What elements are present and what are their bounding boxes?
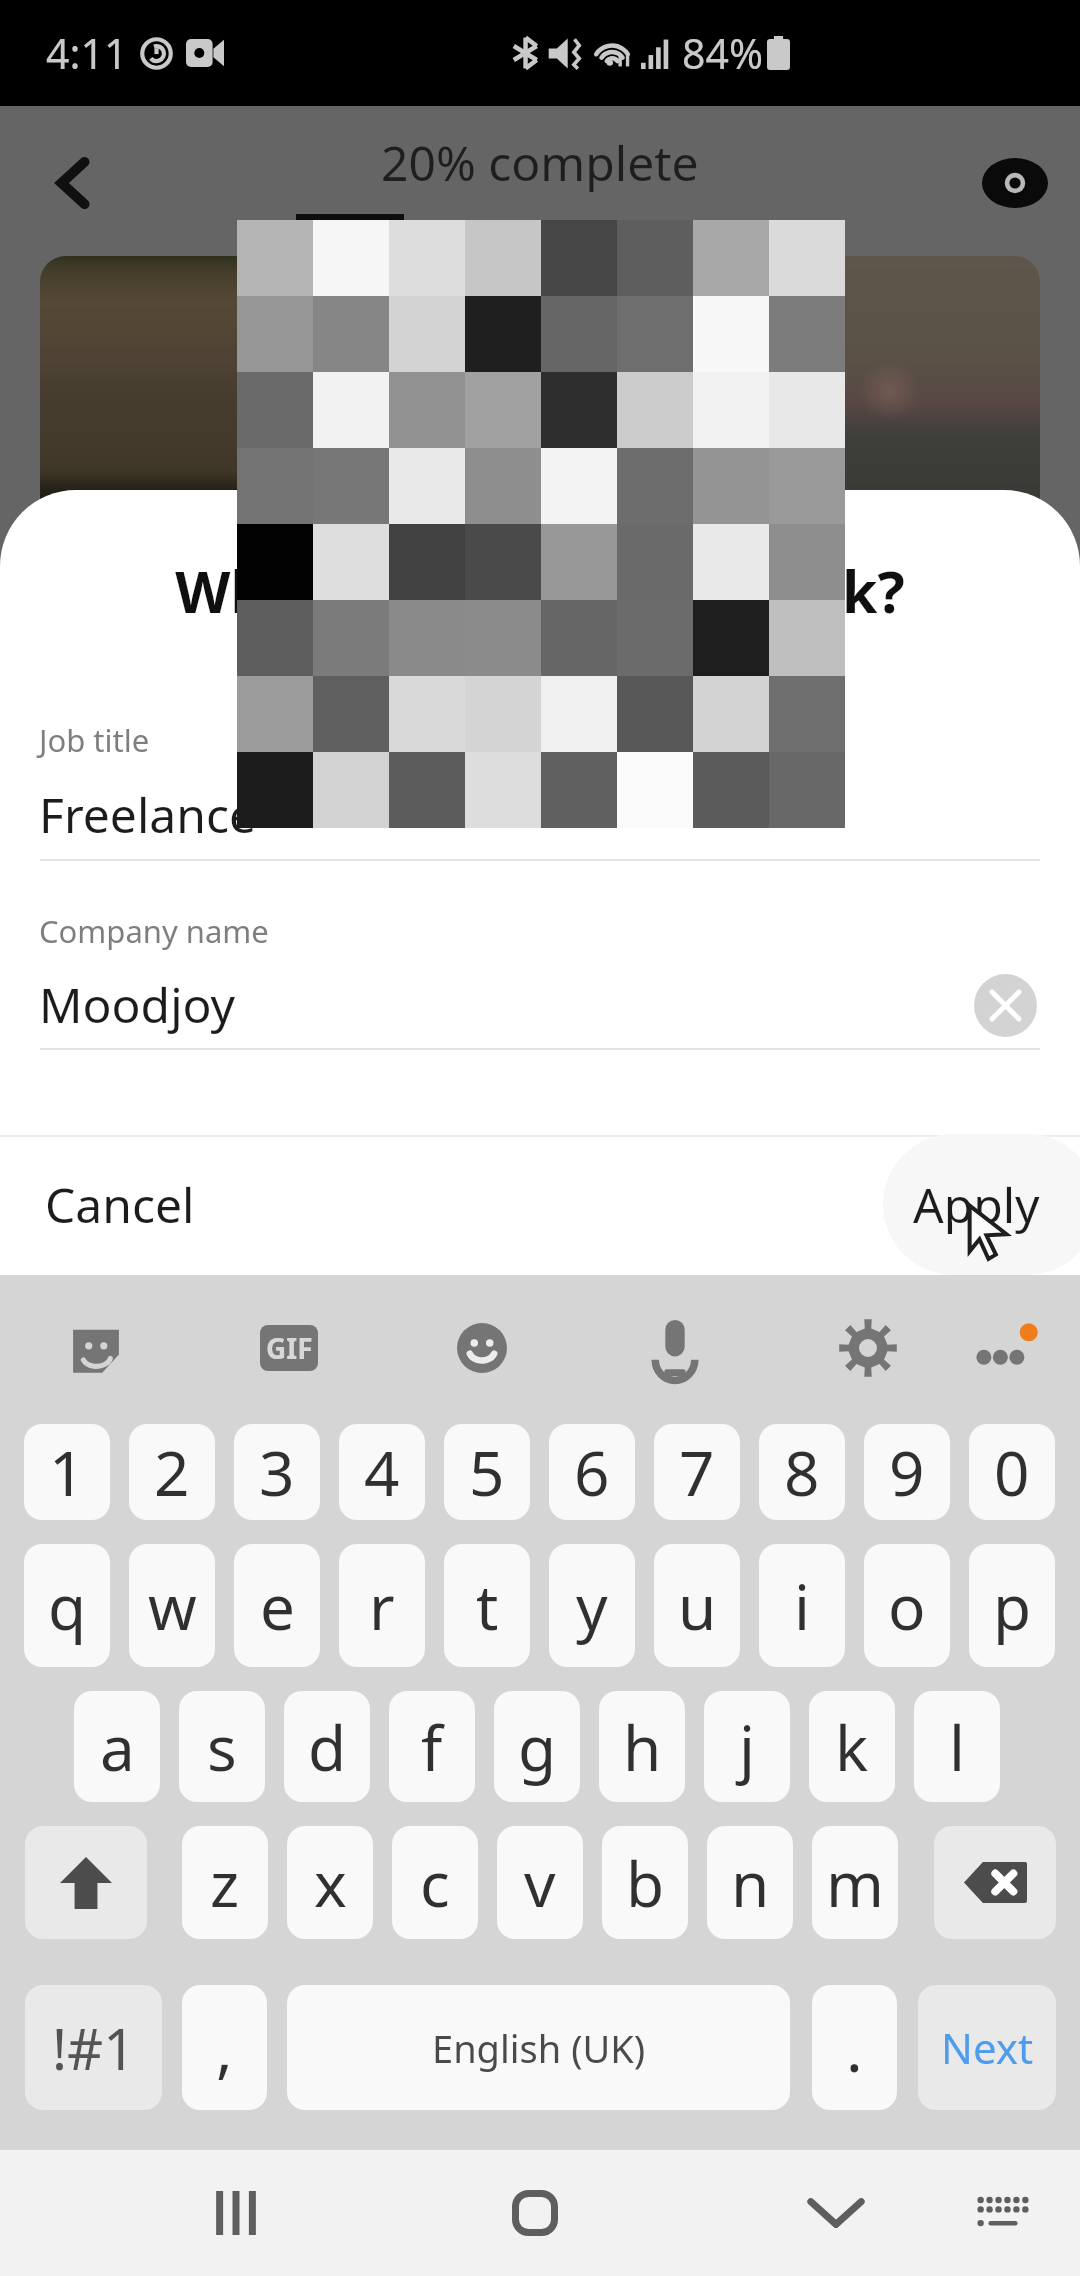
button[interactable]: Next <box>918 1985 1056 2110</box>
button[interactable]: r <box>339 1544 425 1667</box>
button[interactable]: 2 <box>129 1424 215 1520</box>
button[interactable]: Home <box>475 2150 595 2276</box>
button[interactable]: Change keyboard <box>943 2150 1063 2276</box>
staticText: 84% <box>682 25 763 81</box>
staticText: What do you do for work? <box>10 552 1070 630</box>
button[interactable]: 5 <box>444 1424 530 1520</box>
button[interactable]: j <box>704 1691 790 1802</box>
button[interactable]: u <box>654 1544 740 1667</box>
staticText: GIF <box>266 1329 313 1367</box>
staticText: a <box>100 1705 135 1789</box>
button[interactable]: h <box>599 1691 685 1802</box>
button[interactable]: Keyboard settings <box>822 1302 914 1394</box>
staticText: i <box>794 1564 810 1648</box>
button[interactable]: w <box>129 1544 215 1667</box>
staticText: m <box>826 1841 884 1925</box>
button[interactable]: x <box>287 1826 373 1939</box>
button[interactable]: Back <box>27 137 119 229</box>
staticText: k <box>835 1705 869 1789</box>
staticText: English (UK) <box>432 2022 646 2074</box>
staticText: q <box>48 1564 87 1648</box>
staticText: f <box>421 1705 443 1789</box>
button[interactable]: Cancel <box>11 1144 229 1265</box>
staticText: b <box>626 1841 665 1925</box>
button[interactable]: m <box>812 1826 898 1939</box>
staticText: d <box>308 1705 347 1789</box>
staticText: 4:11 <box>46 25 128 81</box>
button[interactable]: 8 <box>759 1424 845 1520</box>
staticText: v <box>524 1841 556 1925</box>
staticText: 4 <box>364 1430 400 1514</box>
staticText: w <box>148 1564 197 1648</box>
staticText: . <box>846 2006 863 2090</box>
staticText: o <box>888 1564 926 1648</box>
staticText: s <box>207 1705 237 1789</box>
staticText: e <box>260 1564 295 1648</box>
button[interactable]: y <box>549 1544 635 1667</box>
button[interactable]: n <box>707 1826 793 1939</box>
staticText: 1 <box>49 1430 85 1514</box>
button[interactable]: v <box>497 1826 583 1939</box>
button[interactable]: 7 <box>654 1424 740 1520</box>
button[interactable]: 0 <box>969 1424 1055 1520</box>
button[interactable]: Emoji <box>436 1302 528 1394</box>
staticText: r <box>369 1564 395 1648</box>
staticText: 5 <box>469 1430 505 1514</box>
staticText: Company name <box>39 910 269 952</box>
button[interactable]: e <box>234 1544 320 1667</box>
button[interactable]: 4 <box>339 1424 425 1520</box>
button[interactable]: c <box>392 1826 478 1939</box>
button[interactable]: 3 <box>234 1424 320 1520</box>
button[interactable]: a <box>74 1691 160 1802</box>
button[interactable]: s <box>179 1691 265 1802</box>
button[interactable]: Stickers <box>50 1302 142 1394</box>
button[interactable]: Hide keyboard <box>776 2150 896 2276</box>
button[interactable]: More options <box>959 1302 1051 1394</box>
staticText: t <box>476 1564 499 1648</box>
staticText: Moodjoy <box>39 972 236 1037</box>
button[interactable]: 6 <box>549 1424 635 1520</box>
button[interactable]: i <box>759 1544 845 1667</box>
staticText: g <box>518 1705 557 1789</box>
button[interactable]: Clear company name <box>974 974 1037 1037</box>
staticText: Cancel <box>45 1172 195 1237</box>
button[interactable]: 9 <box>864 1424 950 1520</box>
button[interactable]: k <box>809 1691 895 1802</box>
staticText: 9 <box>889 1430 925 1514</box>
button[interactable]: GIF <box>243 1302 335 1394</box>
staticText: !#1 <box>52 2010 136 2086</box>
staticText: , <box>216 2006 233 2090</box>
button[interactable]: q <box>24 1544 110 1667</box>
button[interactable]: Voice input <box>629 1302 721 1394</box>
button[interactable]: t <box>444 1544 530 1667</box>
button[interactable]: b <box>602 1826 688 1939</box>
button[interactable]: f <box>389 1691 475 1802</box>
button[interactable]: d <box>284 1691 370 1802</box>
staticText: y <box>576 1564 608 1648</box>
button[interactable]: Recent apps <box>176 2150 296 2276</box>
staticText: x <box>314 1841 347 1925</box>
staticText: 2 <box>154 1430 190 1514</box>
button[interactable]: o <box>864 1544 950 1667</box>
button[interactable]: 1 <box>24 1424 110 1520</box>
button[interactable]: Apply <box>883 1134 1080 1275</box>
button[interactable]: Shift <box>25 1826 147 1939</box>
staticText: u <box>678 1564 717 1648</box>
button[interactable]: g <box>494 1691 580 1802</box>
staticText: h <box>623 1705 662 1789</box>
staticText: z <box>210 1841 240 1925</box>
button[interactable]: Backspace <box>934 1826 1056 1939</box>
button[interactable]: English (UK) <box>287 1985 790 2110</box>
staticText: Freelance <box>39 782 257 847</box>
button[interactable]: !#1 <box>25 1985 162 2110</box>
button[interactable]: l <box>914 1691 1000 1802</box>
staticText: 20% complete <box>381 130 699 195</box>
staticText: 3 <box>259 1430 295 1514</box>
button[interactable]: z <box>182 1826 268 1939</box>
button[interactable]: . <box>812 1985 897 2110</box>
button[interactable]: p <box>969 1544 1055 1667</box>
button[interactable]: Preview profile <box>969 137 1061 229</box>
staticText: p <box>993 1564 1032 1648</box>
staticText: l <box>949 1705 965 1789</box>
button[interactable]: , <box>182 1985 267 2110</box>
